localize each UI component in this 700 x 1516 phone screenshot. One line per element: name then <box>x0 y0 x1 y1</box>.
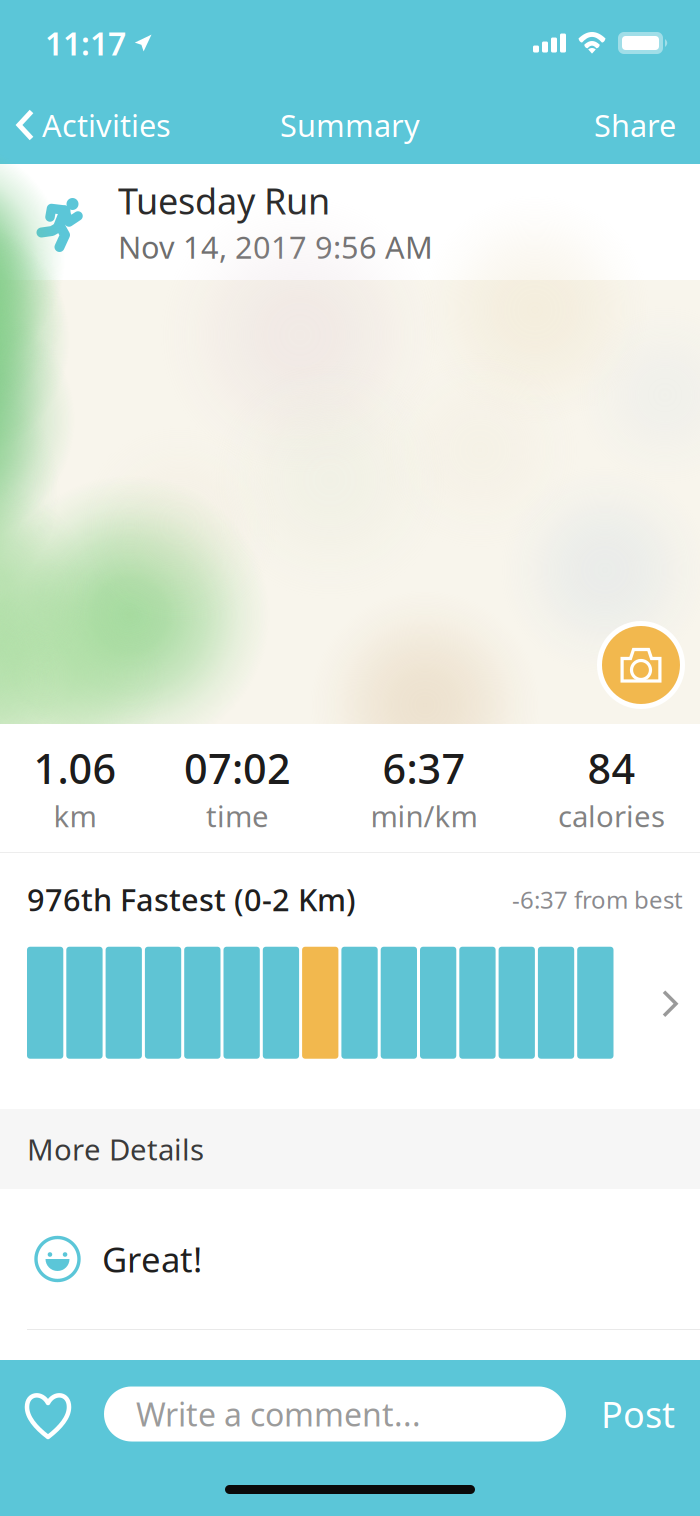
staticText: 6:37 <box>382 741 465 795</box>
staticText: km <box>53 796 96 835</box>
staticText: Tuesday Run <box>118 177 330 224</box>
staticText: 11:17 <box>45 22 126 64</box>
staticText: Activities <box>42 105 171 145</box>
staticText: Summary <box>280 105 420 145</box>
staticText: 84 <box>587 741 635 795</box>
staticText: 976th Fastest (0-2 Km) <box>27 879 356 920</box>
button[interactable]: Share <box>572 86 700 164</box>
staticText: Nov 14, 2017 9:56 AM <box>118 226 433 267</box>
button[interactable]: 976th Fastest (0-2 Km) <box>0 853 700 1109</box>
button[interactable]: Activities <box>0 86 185 164</box>
staticText: calories <box>558 796 665 835</box>
staticText: Share <box>594 105 676 145</box>
button[interactable]: Like <box>0 1378 104 1450</box>
button[interactable]: Add photo <box>594 618 688 712</box>
staticText: 07:02 <box>184 741 291 795</box>
staticText: Great! <box>102 1236 202 1282</box>
button[interactable]: Post <box>575 1378 700 1450</box>
staticText: Post <box>601 1390 675 1438</box>
staticText: min/km <box>370 796 477 835</box>
staticText: time <box>206 796 269 835</box>
button[interactable]: Write a comment... <box>104 1378 566 1450</box>
staticText: 1.06 <box>33 741 116 795</box>
staticText: -6:37 from best <box>512 883 683 915</box>
staticText: More Details <box>27 1129 204 1168</box>
staticText: Write a comment... <box>136 1393 421 1435</box>
